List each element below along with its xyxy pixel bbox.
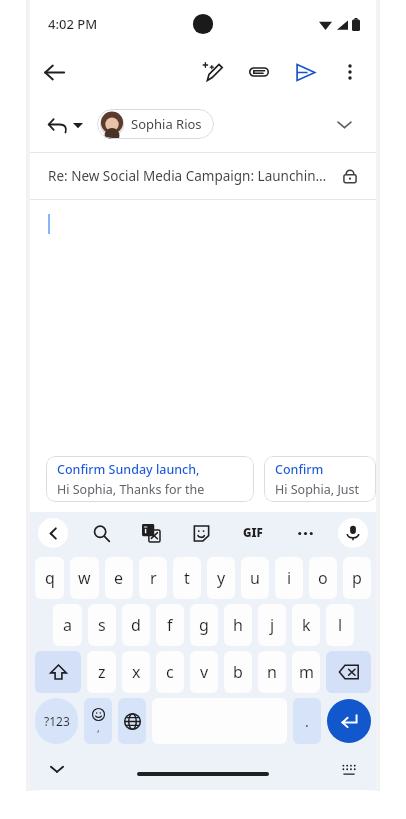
staticText: GIF [243,525,263,541]
staticText: g [199,614,209,636]
button[interactable]: Shift [35,651,81,693]
staticText: Confirm Sunday la [275,461,365,478]
button[interactable]: Expand recipients [326,106,362,142]
staticText: x [132,661,141,683]
button[interactable]: More options [328,50,372,94]
button[interactable]: p [343,557,371,599]
staticText: , [97,721,100,735]
staticText: u [250,567,260,589]
button[interactable]: o [309,557,337,599]
button[interactable]: i [275,557,303,599]
staticText: ?123 [44,713,70,729]
button[interactable]: x [122,651,150,693]
staticText: t [184,567,190,589]
button[interactable]: m [292,651,320,693]
button[interactable]: n [258,651,286,693]
staticText: b [233,661,243,683]
button[interactable]: j [258,604,286,646]
button[interactable]: More [288,516,322,550]
button[interactable]: f [156,604,184,646]
button[interactable]: Confirm Sunday launch, sugge… [46,456,254,502]
button[interactable]: w [70,557,99,599]
button[interactable]: Emoji [84,698,112,744]
staticText: . [305,712,309,731]
button[interactable]: c [156,651,184,693]
button[interactable]: h [224,604,252,646]
staticText: k [302,614,311,636]
button[interactable]: Hide keyboard [40,752,74,786]
button[interactable]: s [88,604,116,646]
staticText: Re: New Social Media Campaign: Launching… [48,167,334,185]
button[interactable]: . [293,698,321,744]
staticText: i [287,567,292,589]
button[interactable]: GIF [234,514,272,552]
staticText: s [98,614,106,636]
staticText: Confirm Sunday launch, sugge… [57,461,243,478]
staticText: v [200,661,209,683]
staticText: w [78,567,91,589]
button[interactable]: Backspace [326,651,371,693]
button[interactable]: Enter [327,699,371,743]
button[interactable]: d [122,604,150,646]
staticText: 4:02 PM [48,15,98,33]
button[interactable]: ?123 [35,698,78,744]
button[interactable]: Translate [134,516,168,550]
button[interactable]: Voice input [338,518,368,548]
button[interactable]: q [35,557,64,599]
button[interactable]: Confirm Sunday la [264,456,376,502]
staticText: Hi Sophia, Thanks for the updat… [57,481,243,498]
staticText: h [233,614,243,636]
staticText: l [338,614,343,636]
button[interactable]: Stickers [184,516,218,550]
staticText: q [45,567,55,589]
staticText: c [166,661,174,683]
staticText: f [167,614,173,636]
button[interactable]: b [224,651,252,693]
button[interactable]: Back [30,48,78,96]
button[interactable]: Keyboard settings [332,752,366,786]
button[interactable]: Attach file [236,49,282,95]
button[interactable]: v [190,651,218,693]
staticText: o [318,567,328,589]
staticText: d [131,614,141,636]
button[interactable]: Sophia Rios [97,109,214,139]
button[interactable]: a [53,604,82,646]
button[interactable]: y [207,557,235,599]
staticText: z [98,661,106,683]
button[interactable]: g [190,604,218,646]
button[interactable]: Search [84,516,118,550]
staticText: r [150,567,157,589]
button[interactable]: t [173,557,201,599]
staticText: Sophia Rios [131,115,202,133]
staticText: n [267,661,277,683]
button[interactable]: Change language [118,698,146,744]
button[interactable]: Formatting [190,49,236,95]
staticText: j [270,614,275,636]
staticText: a [63,614,72,636]
staticText: p [352,567,362,589]
staticText: m [299,661,314,683]
button[interactable]: e [105,557,133,599]
staticText: e [114,567,124,589]
button[interactable]: Reply options [44,109,87,140]
button[interactable]: Send [282,49,328,95]
button[interactable]: Re: New Social Media Campaign: Launching… [30,153,376,199]
staticText: Hi Sophia, Just to c [275,481,365,498]
button[interactable]: z [87,651,116,693]
button[interactable]: r [139,557,167,599]
button[interactable]: u [241,557,269,599]
button[interactable]: k [292,604,320,646]
button[interactable]: Close toolbar [38,518,68,548]
button[interactable]: l [326,604,354,646]
staticText: y [217,567,226,589]
